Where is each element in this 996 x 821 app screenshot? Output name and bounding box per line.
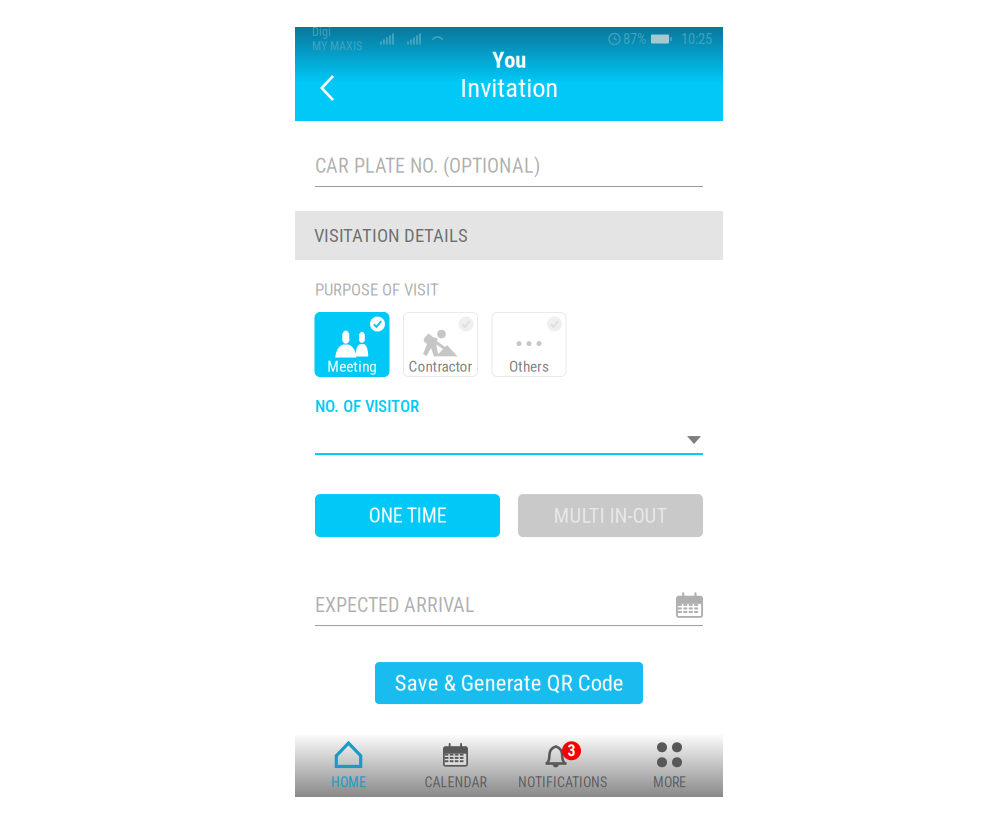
staticText: 10:25: [681, 30, 712, 48]
staticText: CALENDAR: [424, 774, 486, 791]
staticText: Invitation: [460, 72, 558, 104]
staticText: Save & Generate QR Code: [394, 670, 623, 696]
button[interactable]: CALENDAR: [402, 733, 509, 799]
staticText: PURPOSE OF VISIT: [315, 280, 439, 299]
button[interactable]: HOME: [295, 733, 402, 799]
staticText: Meeting: [327, 358, 377, 376]
staticText: ONE TIME: [368, 504, 446, 527]
staticText: Others: [509, 358, 549, 376]
staticText: 87%: [623, 30, 646, 48]
staticText: EXPECTED ARRIVAL: [315, 593, 475, 617]
staticText: Digi: [312, 25, 331, 39]
staticText: NOTIFICATIONS: [518, 774, 607, 791]
button[interactable]: 3: [509, 733, 616, 799]
staticText: CAR PLATE NO. (OPTIONAL): [315, 154, 540, 178]
staticText: MY MAXIS: [312, 39, 362, 53]
button[interactable]: Choose date: [676, 592, 703, 619]
staticText: VISITATION DETAILS: [314, 225, 468, 246]
button[interactable]: MORE: [616, 733, 723, 799]
staticText: You: [492, 47, 526, 73]
staticText: Contractor: [408, 358, 472, 376]
button[interactable]: Contractor: [403, 312, 477, 376]
button[interactable]: Others: [492, 312, 566, 376]
staticText: 3: [567, 741, 575, 760]
staticText: NO. OF VISITOR: [315, 396, 419, 416]
button[interactable]: ONE TIME: [315, 494, 500, 537]
staticText: HOME: [331, 774, 366, 791]
button[interactable]: Save & Generate QR Code: [375, 662, 643, 704]
button[interactable]: Meeting: [315, 312, 389, 376]
staticText: MORE: [653, 774, 686, 791]
staticText: MULTI IN-OUT: [553, 503, 667, 528]
button[interactable]: Back: [295, 69, 353, 106]
button[interactable]: MULTI IN-OUT: [518, 494, 703, 537]
